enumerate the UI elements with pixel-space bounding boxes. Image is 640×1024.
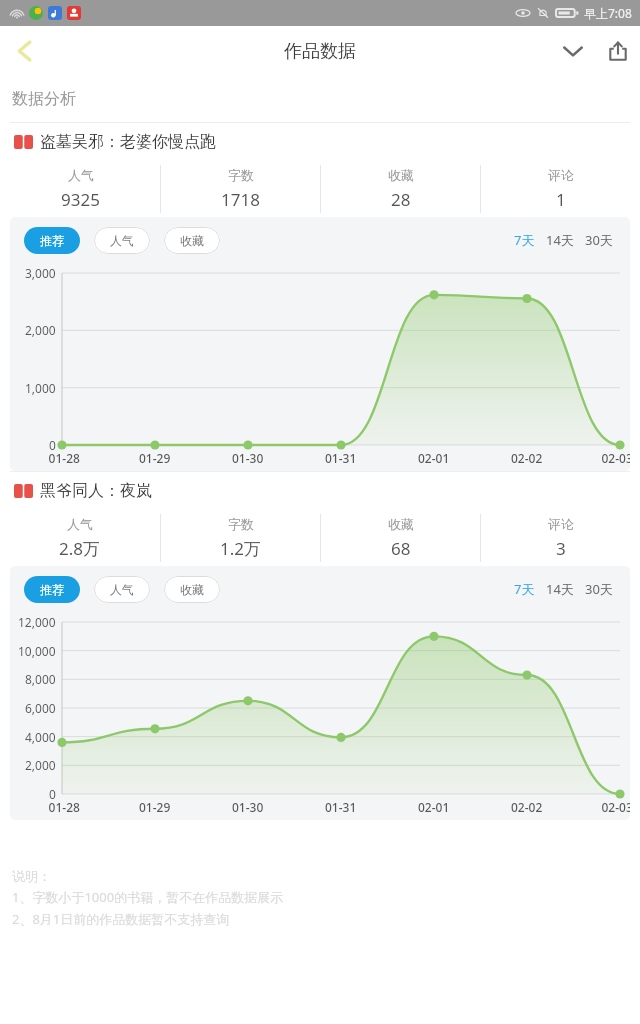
staticText: 评论 — [548, 516, 574, 532]
staticText: 收藏 — [180, 233, 204, 248]
button[interactable]: 盗墓吴邪：老婆你慢点跑 — [14, 123, 640, 161]
staticText: 人气 — [110, 233, 134, 248]
staticText: 1.2万 — [220, 537, 262, 560]
staticText: 9325 — [61, 188, 100, 211]
staticText: 收藏 — [180, 582, 204, 597]
staticText: 1 — [556, 188, 566, 211]
staticText: 黑爷同人：夜岚 — [40, 481, 152, 501]
staticText: 数据分析 — [12, 89, 76, 109]
staticText: 说明： — [12, 868, 51, 884]
staticText: 68 — [391, 537, 411, 560]
button[interactable]: 7天 — [511, 228, 538, 252]
staticText: 1、字数小于1000的书籍，暂不在作品数据展示 — [12, 888, 284, 906]
button[interactable]: 推荐 — [24, 227, 80, 254]
button[interactable]: Expand — [550, 28, 596, 74]
staticText: 14天 — [546, 580, 574, 598]
button[interactable]: 30天 — [582, 577, 616, 601]
staticText: 推荐 — [40, 233, 64, 248]
staticText: 14天 — [546, 231, 574, 249]
staticText: 2.8万 — [59, 537, 101, 560]
staticText: 7天 — [514, 231, 535, 249]
staticText: 3 — [556, 537, 566, 560]
staticText: 30天 — [585, 580, 613, 598]
button[interactable]: 人气 — [94, 227, 150, 254]
button[interactable]: 7天 — [511, 577, 538, 601]
staticText: 推荐 — [40, 582, 64, 597]
staticText: 字数 — [228, 516, 254, 532]
staticText: 收藏 — [388, 516, 414, 532]
button[interactable]: 黑爷同人：夜岚 — [14, 472, 640, 510]
staticText: 1718 — [221, 188, 260, 211]
staticText: 30天 — [585, 231, 613, 249]
staticText: 收藏 — [388, 167, 414, 183]
staticText: 人气 — [67, 516, 93, 532]
button[interactable]: 30天 — [582, 228, 616, 252]
staticText: 字数 — [228, 167, 254, 183]
staticText: 2、8月1日前的作品数据暂不支持查询 — [12, 910, 230, 928]
button[interactable]: Share — [596, 29, 640, 73]
staticText: 人气 — [110, 582, 134, 597]
staticText: 28 — [391, 188, 411, 211]
staticText: 早上7:08 — [584, 5, 632, 21]
staticText: 7天 — [514, 580, 535, 598]
button[interactable]: 推荐 — [24, 576, 80, 603]
button[interactable]: 14天 — [543, 577, 577, 601]
button[interactable]: 收藏 — [164, 576, 220, 603]
staticText: 作品数据 — [284, 40, 356, 63]
staticText: 评论 — [548, 167, 574, 183]
button[interactable]: 收藏 — [164, 227, 220, 254]
staticText: 盗墓吴邪：老婆你慢点跑 — [40, 132, 216, 152]
button[interactable]: 14天 — [543, 228, 577, 252]
button[interactable]: Back — [0, 26, 50, 76]
button[interactable]: 人气 — [94, 576, 150, 603]
staticText: 人气 — [68, 167, 94, 183]
